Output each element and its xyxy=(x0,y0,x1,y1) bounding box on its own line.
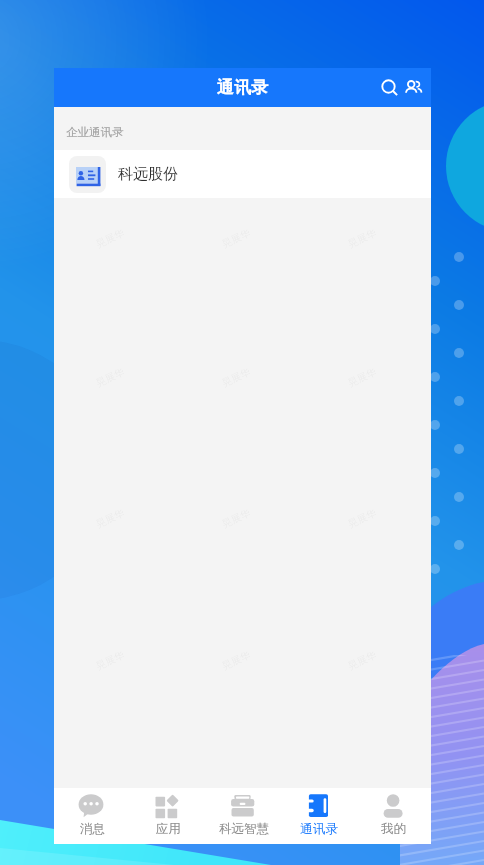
button[interactable]: Search xyxy=(376,74,404,102)
staticText: 我的 xyxy=(381,821,406,837)
staticText: 科远股份 xyxy=(118,165,178,184)
staticText: 通讯录 xyxy=(300,821,338,837)
staticText: 消息 xyxy=(80,821,105,837)
button[interactable]: 通讯录 xyxy=(281,788,356,844)
button[interactable]: 应用 xyxy=(130,788,206,844)
staticText: 通讯录 xyxy=(217,77,268,98)
staticText: 科远智慧 xyxy=(219,821,269,837)
button[interactable]: 我的 xyxy=(356,788,431,844)
staticText: 应用 xyxy=(156,821,181,837)
button[interactable]: Contacts xyxy=(400,74,428,102)
button[interactable]: 消息 xyxy=(54,788,130,844)
staticText: 企业通讯录 xyxy=(66,125,124,139)
button[interactable]: 科远股份 xyxy=(54,150,431,198)
button[interactable]: 科远智慧 xyxy=(206,788,281,844)
